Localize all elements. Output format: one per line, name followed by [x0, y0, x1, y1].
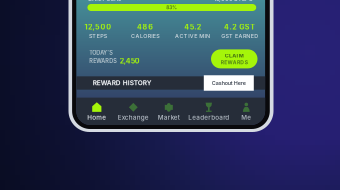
button[interactable]: Cashout Here [204, 75, 254, 91]
staticText: Exchange [118, 114, 149, 121]
staticText: Cashout Here [212, 80, 246, 86]
staticText: 4.2 GST [224, 23, 255, 31]
button[interactable]: Me [222, 102, 270, 121]
staticText: Home [87, 114, 106, 121]
button[interactable]: Exchange [109, 102, 157, 121]
button[interactable]: Leaderboard [185, 102, 233, 121]
staticText: TODAY'S [89, 49, 113, 56]
staticText: 45.2 [184, 23, 201, 31]
staticText: CALORIES [131, 33, 159, 39]
staticText: 12,500 [84, 23, 111, 31]
staticText: REWARDS [89, 58, 117, 64]
button[interactable]: Market [145, 102, 193, 121]
staticText: 2,450 [120, 57, 140, 65]
button[interactable]: Home [73, 102, 121, 121]
staticText: 83% [166, 5, 177, 10]
staticText: STEPS [89, 33, 107, 39]
staticText: REWARDS [221, 59, 248, 65]
staticText: Me [241, 114, 251, 121]
staticText: 10,000 STEPS [214, 0, 253, 2]
staticText: Leaderboard [188, 114, 229, 121]
staticText: 486 [137, 23, 153, 31]
button[interactable]: CLAIM [211, 49, 257, 68]
staticText: Market [158, 114, 180, 121]
staticText: CLAIM [225, 52, 244, 59]
staticText: REWARD HISTORY [93, 79, 152, 87]
staticText: GST EARNED [221, 33, 258, 39]
staticText: DAILY GOAL [88, 0, 121, 2]
staticText: ACTIVE MIN [175, 33, 210, 39]
